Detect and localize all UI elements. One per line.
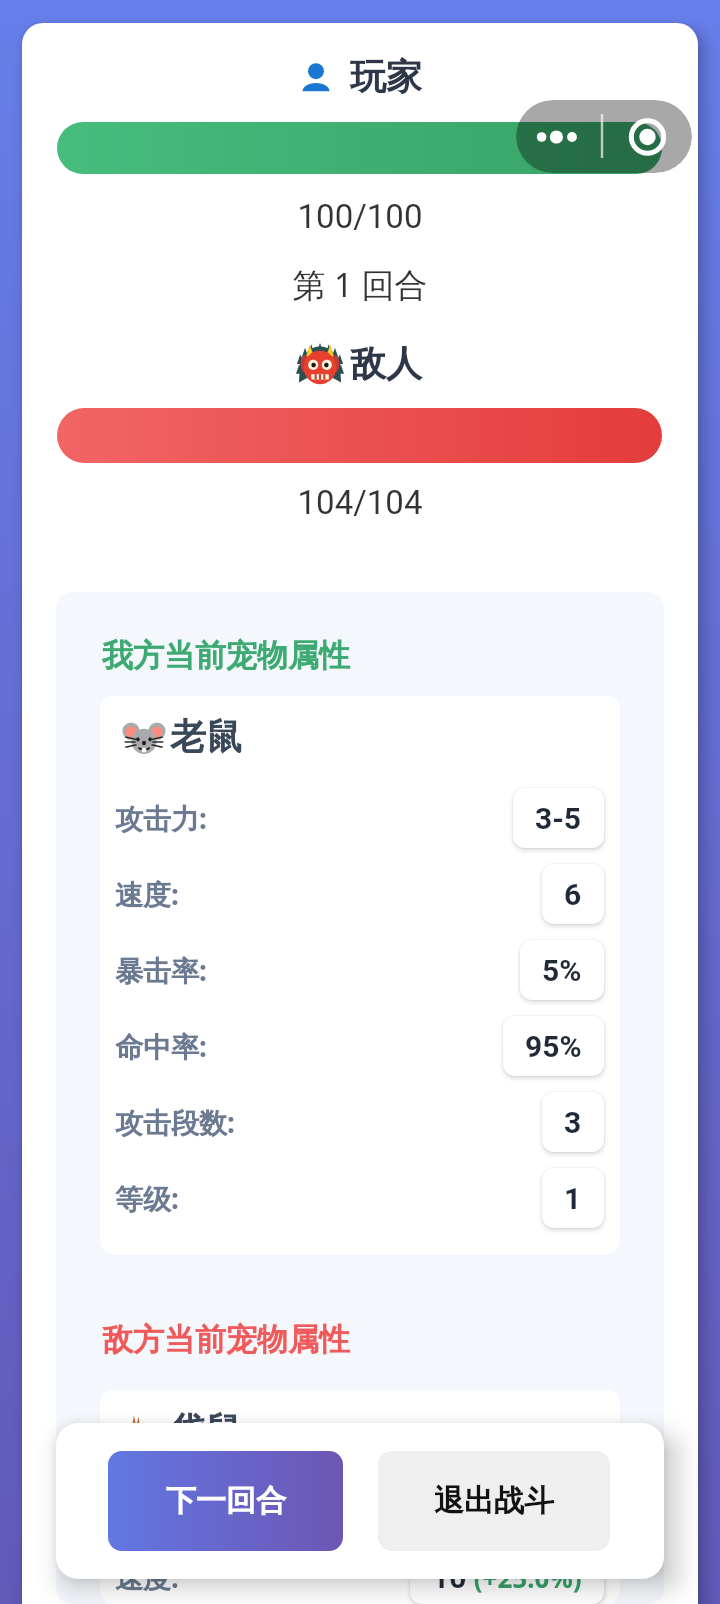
staticText: 第 1 回合 [22,262,698,307]
button[interactable]: 下一回合 [108,1451,343,1551]
staticText: 袋鼠 [170,1408,242,1453]
staticText: 暴击率: [115,951,207,989]
staticText: 老鼠 [170,714,242,759]
staticText: 敌方当前宠物属性 [102,1320,350,1359]
staticText: 等级: [115,1179,179,1217]
staticText: 敌人 [350,341,422,386]
staticText: 攻击段数: [115,1103,235,1141]
button[interactable]: Screen recording controls [516,100,692,173]
staticText: 100/100 [22,197,698,236]
staticText: 5% [542,953,582,988]
staticText: 95% [525,1029,582,1064]
staticText: 退出战斗 [434,1482,554,1520]
staticText: 3 [564,1105,582,1140]
button[interactable]: 退出战斗 [378,1451,610,1551]
staticText: 玩家 [350,54,422,99]
staticText: 下一回合 [166,1482,286,1520]
staticText: 攻击力: [115,1493,207,1531]
staticText: 速度: [115,875,179,913]
staticText: 3-5 [535,801,582,836]
staticText: 1 [564,1181,582,1216]
staticText: 4-7 [535,1495,582,1530]
staticText: (+25.0%) [467,1560,582,1595]
staticText: 命中率: [115,1027,207,1065]
staticText: 104/104 [22,483,698,522]
staticText: 攻击力: [115,799,207,837]
staticText: 速度: [115,1558,179,1596]
staticText: 我方当前宠物属性 [102,636,350,675]
staticText: 10 [432,1560,467,1595]
staticText: 6 [564,877,582,912]
